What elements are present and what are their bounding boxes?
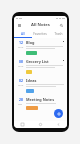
button[interactable]: All [14, 30, 31, 37]
button[interactable]: 08 [14, 57, 67, 76]
staticText: All [21, 32, 25, 36]
button[interactable]: Search [59, 23, 64, 28]
staticText: All Notes [31, 22, 50, 28]
staticText: MAR [18, 64, 24, 67]
button[interactable]: Trash [49, 30, 67, 37]
staticText: Meeting Notes [26, 97, 55, 102]
staticText: 28 [19, 97, 23, 102]
staticText: FEB [18, 102, 23, 105]
staticText: Favorites [33, 32, 47, 36]
button[interactable]: Add note [54, 109, 63, 118]
button[interactable]: Home [31, 121, 49, 128]
staticText: 02 [19, 78, 23, 83]
staticText: 08 [19, 59, 23, 64]
staticText: MAR [18, 45, 24, 48]
staticText: 12 [19, 40, 23, 45]
button[interactable]: Favorites [31, 30, 49, 37]
button[interactable]: 12 [14, 38, 67, 57]
staticText: Grocery List [26, 59, 49, 64]
button[interactable]: Back [49, 121, 67, 128]
staticText: Trash [54, 32, 63, 36]
button[interactable]: Menu [17, 23, 22, 28]
button[interactable]: 28 [14, 95, 67, 112]
button[interactable]: Recents [14, 121, 31, 128]
staticText: Blog [26, 40, 35, 45]
button[interactable]: 02 [14, 76, 67, 95]
staticText: Ideas [26, 78, 37, 83]
staticText: MAR [18, 83, 24, 86]
